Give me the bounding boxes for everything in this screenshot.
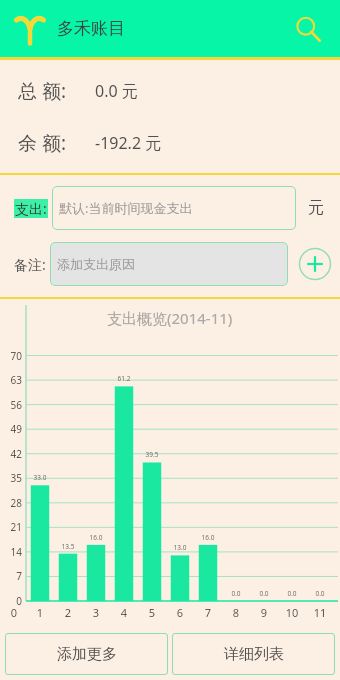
- staticText: 13.5: [56, 542, 80, 551]
- staticText: 42: [0, 447, 22, 461]
- button[interactable]: Add: [298, 247, 332, 281]
- button[interactable]: 添加支出原因: [50, 242, 288, 286]
- button[interactable]: 详细列表: [172, 633, 335, 675]
- staticText: 0.0 元: [95, 80, 138, 102]
- staticText: 8: [224, 605, 248, 620]
- staticText: 63: [0, 373, 22, 387]
- staticText: 0.0: [224, 589, 248, 598]
- staticText: 0: [0, 594, 22, 608]
- staticText: 70: [0, 349, 22, 363]
- button[interactable]: 添加更多: [5, 633, 168, 675]
- button[interactable]: Search: [286, 7, 330, 51]
- staticText: 49: [0, 422, 22, 436]
- staticText: 0.0: [252, 589, 276, 598]
- staticText: 0.0: [280, 589, 304, 598]
- staticText: 1: [28, 605, 52, 620]
- staticText: 11: [308, 605, 332, 620]
- staticText: 33.0: [28, 473, 52, 482]
- staticText: 备注:: [14, 255, 46, 274]
- staticText: 0.0: [308, 589, 332, 598]
- staticText: 0: [2, 605, 26, 620]
- staticText: 多禾账目: [57, 18, 125, 39]
- staticText: 2: [56, 605, 80, 620]
- staticText: 21: [0, 520, 22, 534]
- staticText: 10: [280, 605, 304, 620]
- staticText: 元: [308, 198, 324, 218]
- staticText: 7: [196, 605, 220, 620]
- staticText: 总 额:: [18, 78, 67, 104]
- staticText: 13.0: [168, 543, 192, 552]
- staticText: 16.0: [196, 533, 220, 542]
- button[interactable]: 默认:当前时间现金支出: [52, 186, 296, 230]
- staticText: 14: [0, 545, 22, 559]
- staticText: 39.5: [140, 450, 164, 459]
- staticText: 5: [140, 605, 164, 620]
- staticText: 默认:当前时间现金支出: [59, 199, 193, 217]
- staticText: 6: [168, 605, 192, 620]
- staticText: 3: [84, 605, 108, 620]
- staticText: 4: [112, 605, 136, 620]
- staticText: 9: [252, 605, 276, 620]
- staticText: 详细列表: [224, 645, 284, 664]
- staticText: 35: [0, 471, 22, 485]
- staticText: 16.0: [84, 533, 108, 542]
- staticText: 56: [0, 398, 22, 412]
- staticText: 28: [0, 496, 22, 510]
- staticText: 添加更多: [57, 645, 117, 664]
- staticText: 7: [0, 569, 22, 583]
- staticText: -192.2 元: [95, 132, 162, 154]
- staticText: 添加支出原因: [57, 256, 135, 272]
- staticText: 余 额:: [18, 130, 67, 156]
- staticText: 支出概览(2014-11): [107, 308, 233, 328]
- staticText: 61.2: [112, 374, 136, 383]
- staticText: 支出:: [15, 199, 47, 218]
